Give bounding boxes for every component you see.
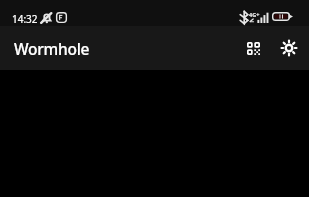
staticText: Wormhole <box>14 38 90 59</box>
button[interactable]: Brightness <box>271 30 307 66</box>
staticText: 4G+ <box>249 11 260 18</box>
button[interactable]: Scan QR code <box>235 30 271 66</box>
staticText: 14:32 <box>12 12 38 26</box>
